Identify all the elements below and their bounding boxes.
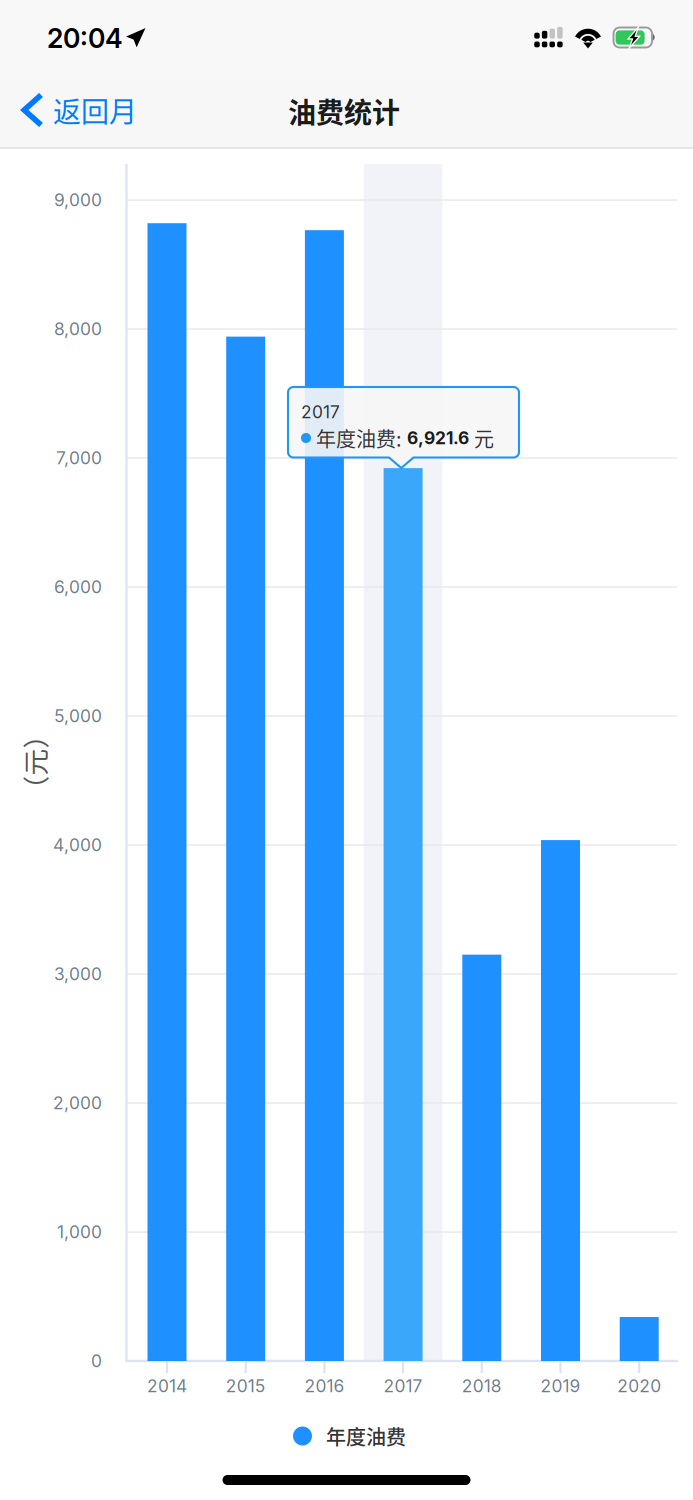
staticText: 9,000 xyxy=(54,189,102,210)
staticText: 2015 xyxy=(226,1375,266,1396)
staticText: 3,000 xyxy=(54,963,102,984)
staticText: （元） xyxy=(0,743,74,781)
staticText: 6,921.6 xyxy=(407,427,469,448)
staticText: 2016 xyxy=(304,1375,344,1396)
staticText: 2020 xyxy=(617,1375,661,1396)
staticText: 2014 xyxy=(147,1375,187,1396)
staticText: 4,000 xyxy=(53,834,102,855)
staticText: 2018 xyxy=(462,1375,502,1396)
staticText: 2,000 xyxy=(53,1092,102,1113)
button[interactable]: 返回月 xyxy=(0,76,160,144)
staticText: 2017 xyxy=(301,401,340,422)
staticText: 元 xyxy=(474,423,494,452)
staticText: 5,000 xyxy=(54,705,102,726)
staticText: 油费统计 xyxy=(288,91,400,131)
staticText: 6,000 xyxy=(54,576,102,597)
staticText: 7,000 xyxy=(56,447,102,468)
staticText: 返回月 xyxy=(53,90,137,130)
staticText: 年度油费: xyxy=(316,423,402,452)
staticText: 年度油费 xyxy=(326,1421,406,1450)
staticText: 0 xyxy=(91,1350,102,1371)
staticText: 20:04 xyxy=(47,22,123,54)
staticText: 1,000 xyxy=(57,1221,102,1242)
staticText: 2017 xyxy=(384,1375,423,1396)
button[interactable]: 年度油费 xyxy=(293,1414,453,1458)
staticText: 8,000 xyxy=(54,318,102,339)
staticText: 2019 xyxy=(540,1375,580,1396)
